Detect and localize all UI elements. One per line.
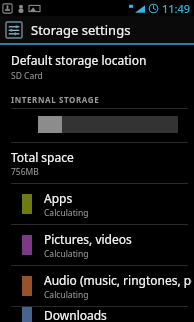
button[interactable]: Downloads [0,307,194,322]
staticText: Calculating [44,248,89,260]
staticText: Calculating [44,289,89,301]
staticText: 756MB [11,166,39,178]
staticText: Audio (music, ringtones, po [44,272,192,288]
staticText: Downloads [44,307,107,322]
staticText: 11:49 [162,1,191,16]
staticText: INTERNAL STORAGE [11,94,100,105]
staticText: Calculating [44,207,89,219]
staticText: Default storage location [11,52,147,68]
staticText: Pictures, videos [44,231,132,247]
staticText: Total space [11,149,74,165]
staticText: SD Card [11,70,43,82]
staticText: Apps [44,190,73,206]
button[interactable]: Apps [0,184,194,224]
button[interactable]: Pictures, videos [0,225,194,265]
button[interactable]: Default storage location [0,45,194,89]
button[interactable]: Total space [0,143,194,183]
button[interactable]: Audio (music, ringtones, po [0,266,194,306]
staticText: Storage settings [31,21,131,39]
button[interactable]: Settings [0,16,194,43]
other: Settings [6,22,22,38]
